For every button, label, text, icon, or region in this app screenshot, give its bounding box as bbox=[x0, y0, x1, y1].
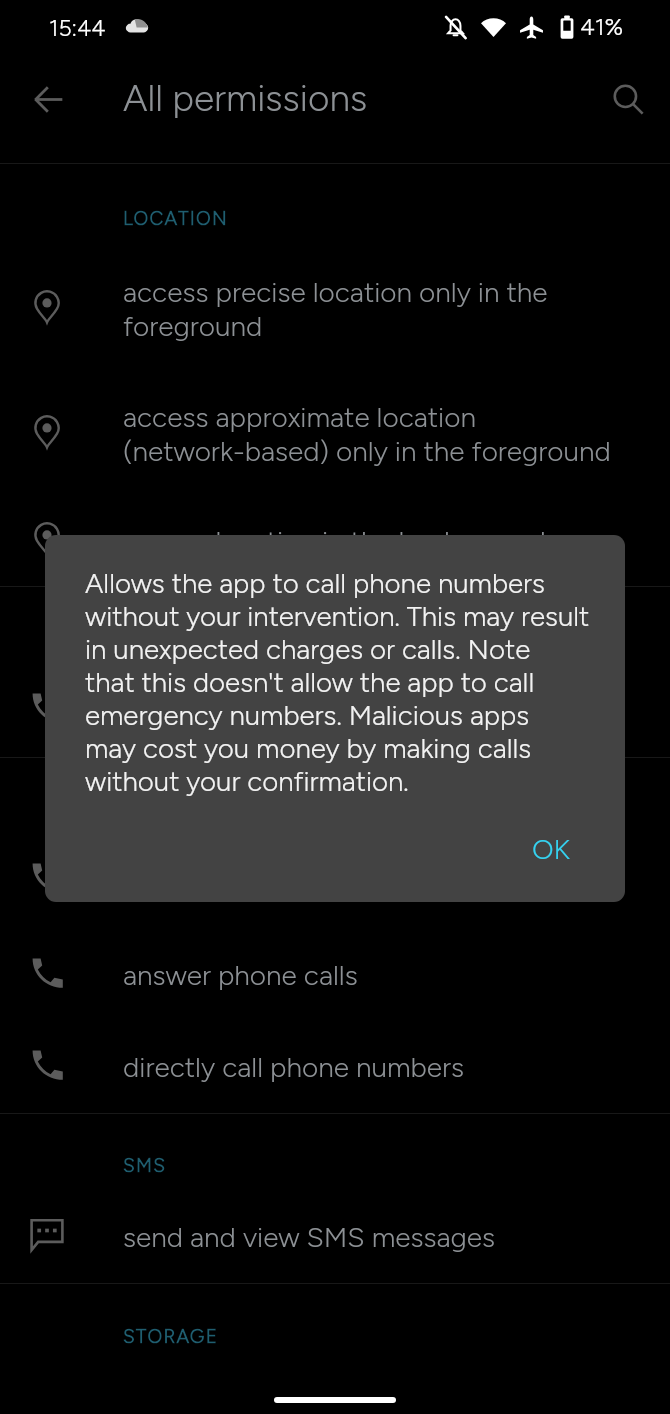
button[interactable]: SMS bbox=[0, 1137, 670, 1193]
button[interactable]: read phone status and identity bbox=[0, 664, 670, 756]
staticText: directly call phone numbers bbox=[123, 1050, 465, 1084]
staticText: SMS bbox=[123, 1154, 167, 1177]
staticText: access approximate location (network-bas… bbox=[123, 400, 611, 468]
button[interactable]: directly call phone numbers bbox=[0, 1021, 670, 1113]
staticText: 41% bbox=[580, 12, 624, 41]
staticText: 15:44 bbox=[49, 14, 106, 42]
staticText: Allows the app to call phone numbers wit… bbox=[85, 567, 590, 798]
staticText: access precise location only in the fore… bbox=[123, 275, 548, 343]
staticText: STORAGE bbox=[123, 1325, 219, 1348]
staticText: read phone status and identity bbox=[123, 693, 501, 727]
button[interactable]: answer phone calls bbox=[0, 929, 670, 1021]
staticText: LOCATION bbox=[123, 207, 228, 230]
button[interactable]: Search bbox=[600, 71, 656, 127]
button[interactable]: LOCATION bbox=[0, 190, 670, 246]
button[interactable]: make and manage phone calls bbox=[0, 834, 670, 926]
button[interactable]: Navigate up bbox=[20, 71, 76, 127]
staticText: OK bbox=[532, 832, 571, 866]
staticText: PHONE bbox=[123, 628, 196, 651]
staticText: answer phone calls bbox=[123, 958, 358, 992]
staticText: send and view SMS messages bbox=[123, 1220, 496, 1254]
button[interactable]: STORAGE bbox=[0, 1308, 670, 1364]
button[interactable]: PHONE bbox=[0, 783, 670, 839]
button[interactable]: send and view SMS messages bbox=[0, 1191, 670, 1283]
button[interactable]: access location in the background bbox=[0, 495, 670, 587]
staticText: access location in the background bbox=[123, 524, 546, 558]
button[interactable]: access precise location only in the fore… bbox=[0, 252, 670, 366]
button[interactable]: access approximate location (network-bas… bbox=[0, 377, 670, 491]
button[interactable]: PHONE bbox=[0, 611, 670, 667]
button[interactable]: OK bbox=[514, 824, 589, 874]
staticText: All permissions bbox=[123, 76, 368, 120]
